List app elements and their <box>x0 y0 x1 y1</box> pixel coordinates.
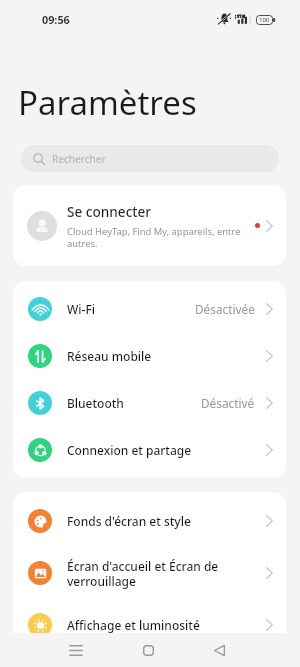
button[interactable]: Se connecter <box>13 185 286 266</box>
button[interactable]: Recents <box>46 633 106 667</box>
button[interactable]: Home <box>118 633 178 667</box>
staticText: Se connecter <box>67 202 152 221</box>
staticText: Paramètres <box>18 80 197 125</box>
staticText: Affichage et luminosité <box>67 617 266 633</box>
button[interactable]: Fonds d'écran et style <box>13 495 286 547</box>
staticText: Désactivé <box>201 395 255 411</box>
staticText: Fonds d'écran et style <box>67 513 266 529</box>
staticText: 100 <box>259 16 271 24</box>
staticText: Wi-Fi <box>67 301 195 317</box>
staticText: Écran d'accueil et Écran de verrouillage <box>67 558 266 589</box>
staticText: Rechercher <box>52 152 106 166</box>
staticText: Réseau mobile <box>67 348 266 364</box>
button[interactable]: Rechercher <box>21 145 279 172</box>
staticText: Bluetooth <box>67 395 201 411</box>
button[interactable]: Bluetooth <box>13 379 286 426</box>
button[interactable]: Connexion et partage <box>13 426 286 473</box>
button[interactable]: Écran d'accueil et Écran de verrouillage <box>13 547 286 599</box>
staticText: 09:56 <box>42 12 70 27</box>
staticText: Connexion et partage <box>67 442 266 458</box>
button[interactable]: Wi-Fi <box>13 285 286 332</box>
button[interactable]: Réseau mobile <box>13 332 286 379</box>
button[interactable]: Back <box>189 633 249 667</box>
staticText: Désactivée <box>195 301 255 317</box>
button[interactable]: Affichage et luminosité <box>13 599 286 651</box>
staticText: Cloud HeyTap, Find My, appareils, entre … <box>67 225 253 250</box>
